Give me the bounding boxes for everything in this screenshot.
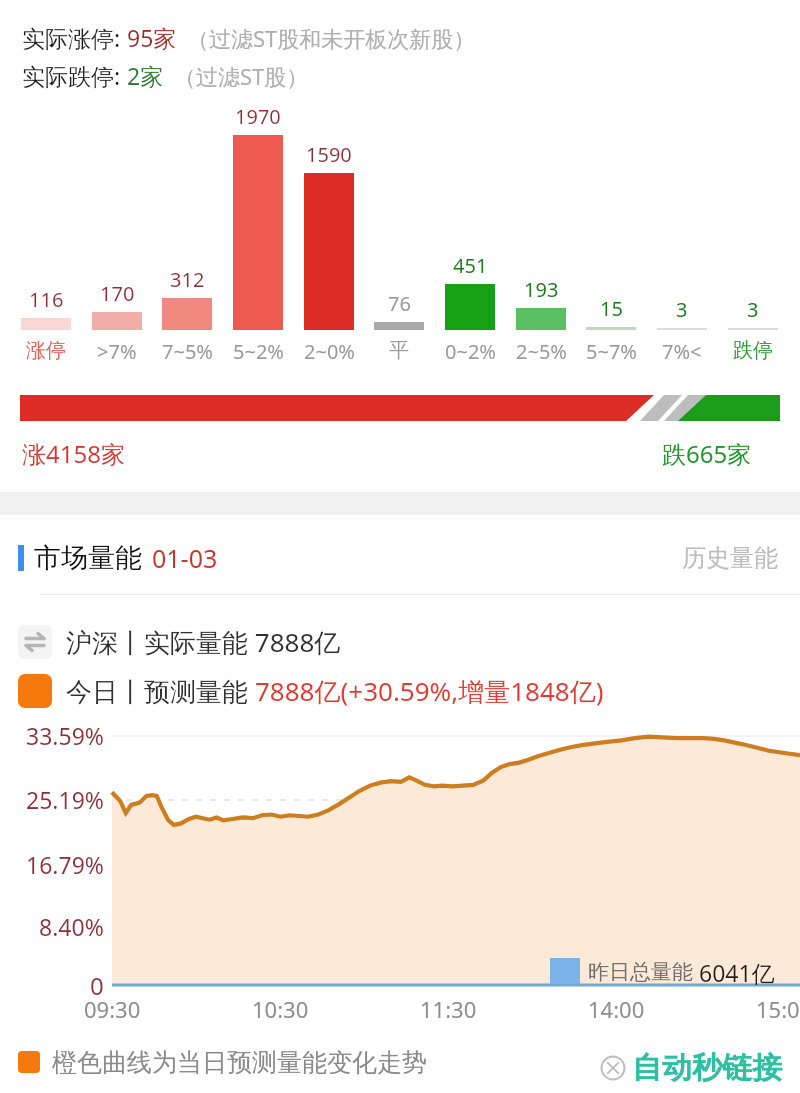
staticText: 橙色曲线为当日预测量能变化走势 (52, 1047, 427, 1078)
staticText: 市场量能 (34, 541, 142, 575)
staticText: 5~2% (233, 338, 284, 365)
staticText: 8.40% (39, 911, 104, 942)
staticText: 14:00 (588, 994, 645, 1024)
staticText: 2~0% (304, 338, 355, 365)
staticText: 193 (524, 276, 559, 303)
button[interactable]: Switch market (18, 620, 341, 664)
button[interactable]: 今日丨预测量能 (18, 668, 604, 714)
staticText: （过滤ST股和未开板次新股） (187, 23, 476, 53)
staticText: 16.79% (26, 849, 104, 880)
staticText: 跌停 (733, 338, 773, 363)
staticText: 312 (170, 266, 205, 293)
staticText: 15:00 (756, 994, 800, 1024)
staticText: 451 (453, 252, 488, 279)
staticText: 01-03 (152, 541, 218, 575)
staticText: （过滤ST股） (174, 61, 309, 91)
staticText: 116 (29, 286, 64, 313)
staticText: 实际涨停: (22, 22, 127, 53)
staticText: 7888亿(+30.59%,增量1848亿) (255, 673, 604, 709)
staticText: 昨日总量能 (588, 957, 699, 985)
staticText: 5~7% (586, 338, 637, 365)
staticText: 7~5% (162, 338, 213, 365)
staticText: 95家 (127, 22, 177, 53)
staticText: 11:30 (420, 994, 477, 1024)
staticText: 沪深丨实际量能 7888亿 (66, 624, 341, 660)
staticText: 25.19% (26, 784, 104, 815)
staticText: 33.59% (26, 720, 104, 751)
staticText: 跌665家 (662, 437, 752, 470)
staticText: 涨停 (26, 338, 66, 363)
staticText: 2家 (127, 60, 164, 91)
staticText: 1590 (306, 141, 352, 168)
staticText: 15 (600, 295, 623, 322)
staticText: 实际跌停: (22, 60, 127, 91)
button[interactable]: 历史量能 (682, 543, 778, 573)
staticText: 170 (100, 280, 135, 307)
staticText: >7% (97, 338, 137, 365)
staticText: 10:30 (252, 994, 309, 1024)
staticText: 平 (389, 338, 409, 363)
staticText: 3 (747, 296, 759, 323)
staticText: 76 (388, 290, 411, 317)
staticText: 7%< (662, 338, 702, 365)
staticText: 历史量能 (682, 543, 778, 573)
staticText: 涨4158家 (22, 437, 125, 470)
staticText: 0 (90, 969, 104, 1002)
other: Switch market (18, 625, 52, 659)
staticText: 自动秒链接 (632, 1049, 782, 1087)
staticText: 2~5% (516, 338, 567, 365)
staticText: 6041亿 (699, 957, 775, 985)
staticText: 1970 (235, 103, 281, 130)
staticText: 今日丨预测量能 (66, 673, 255, 709)
staticText: 3 (676, 296, 688, 323)
staticText: 0~2% (445, 338, 496, 365)
staticText: 09:30 (84, 994, 141, 1024)
